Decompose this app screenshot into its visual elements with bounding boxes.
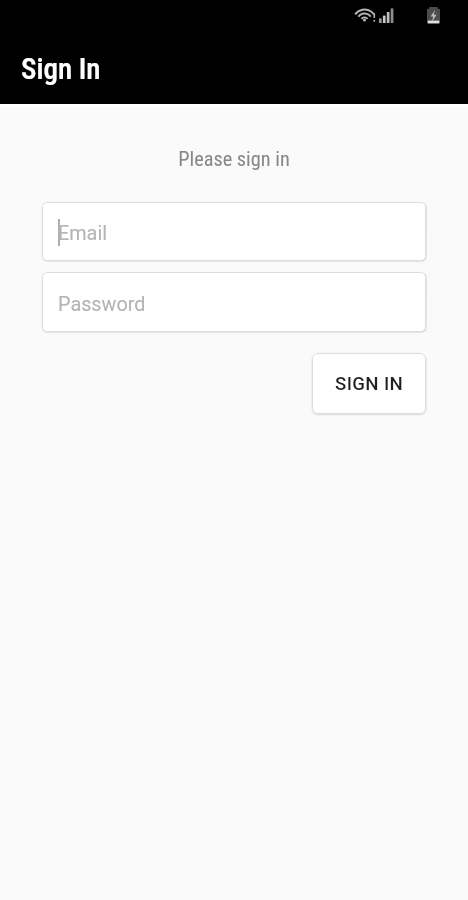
staticText: Email <box>58 222 108 245</box>
button[interactable]: Password <box>42 272 426 332</box>
other: Mobile signal <box>379 8 393 23</box>
other: Battery charging <box>427 7 440 24</box>
button[interactable]: Email <box>42 202 426 261</box>
staticText: Password <box>58 293 146 316</box>
staticText: Please sign in <box>0 147 468 171</box>
staticText: Sign In <box>21 52 101 86</box>
other: Wi-Fi <box>356 8 378 23</box>
staticText: SIGN IN <box>335 373 404 395</box>
button[interactable]: SIGN IN <box>312 353 426 414</box>
